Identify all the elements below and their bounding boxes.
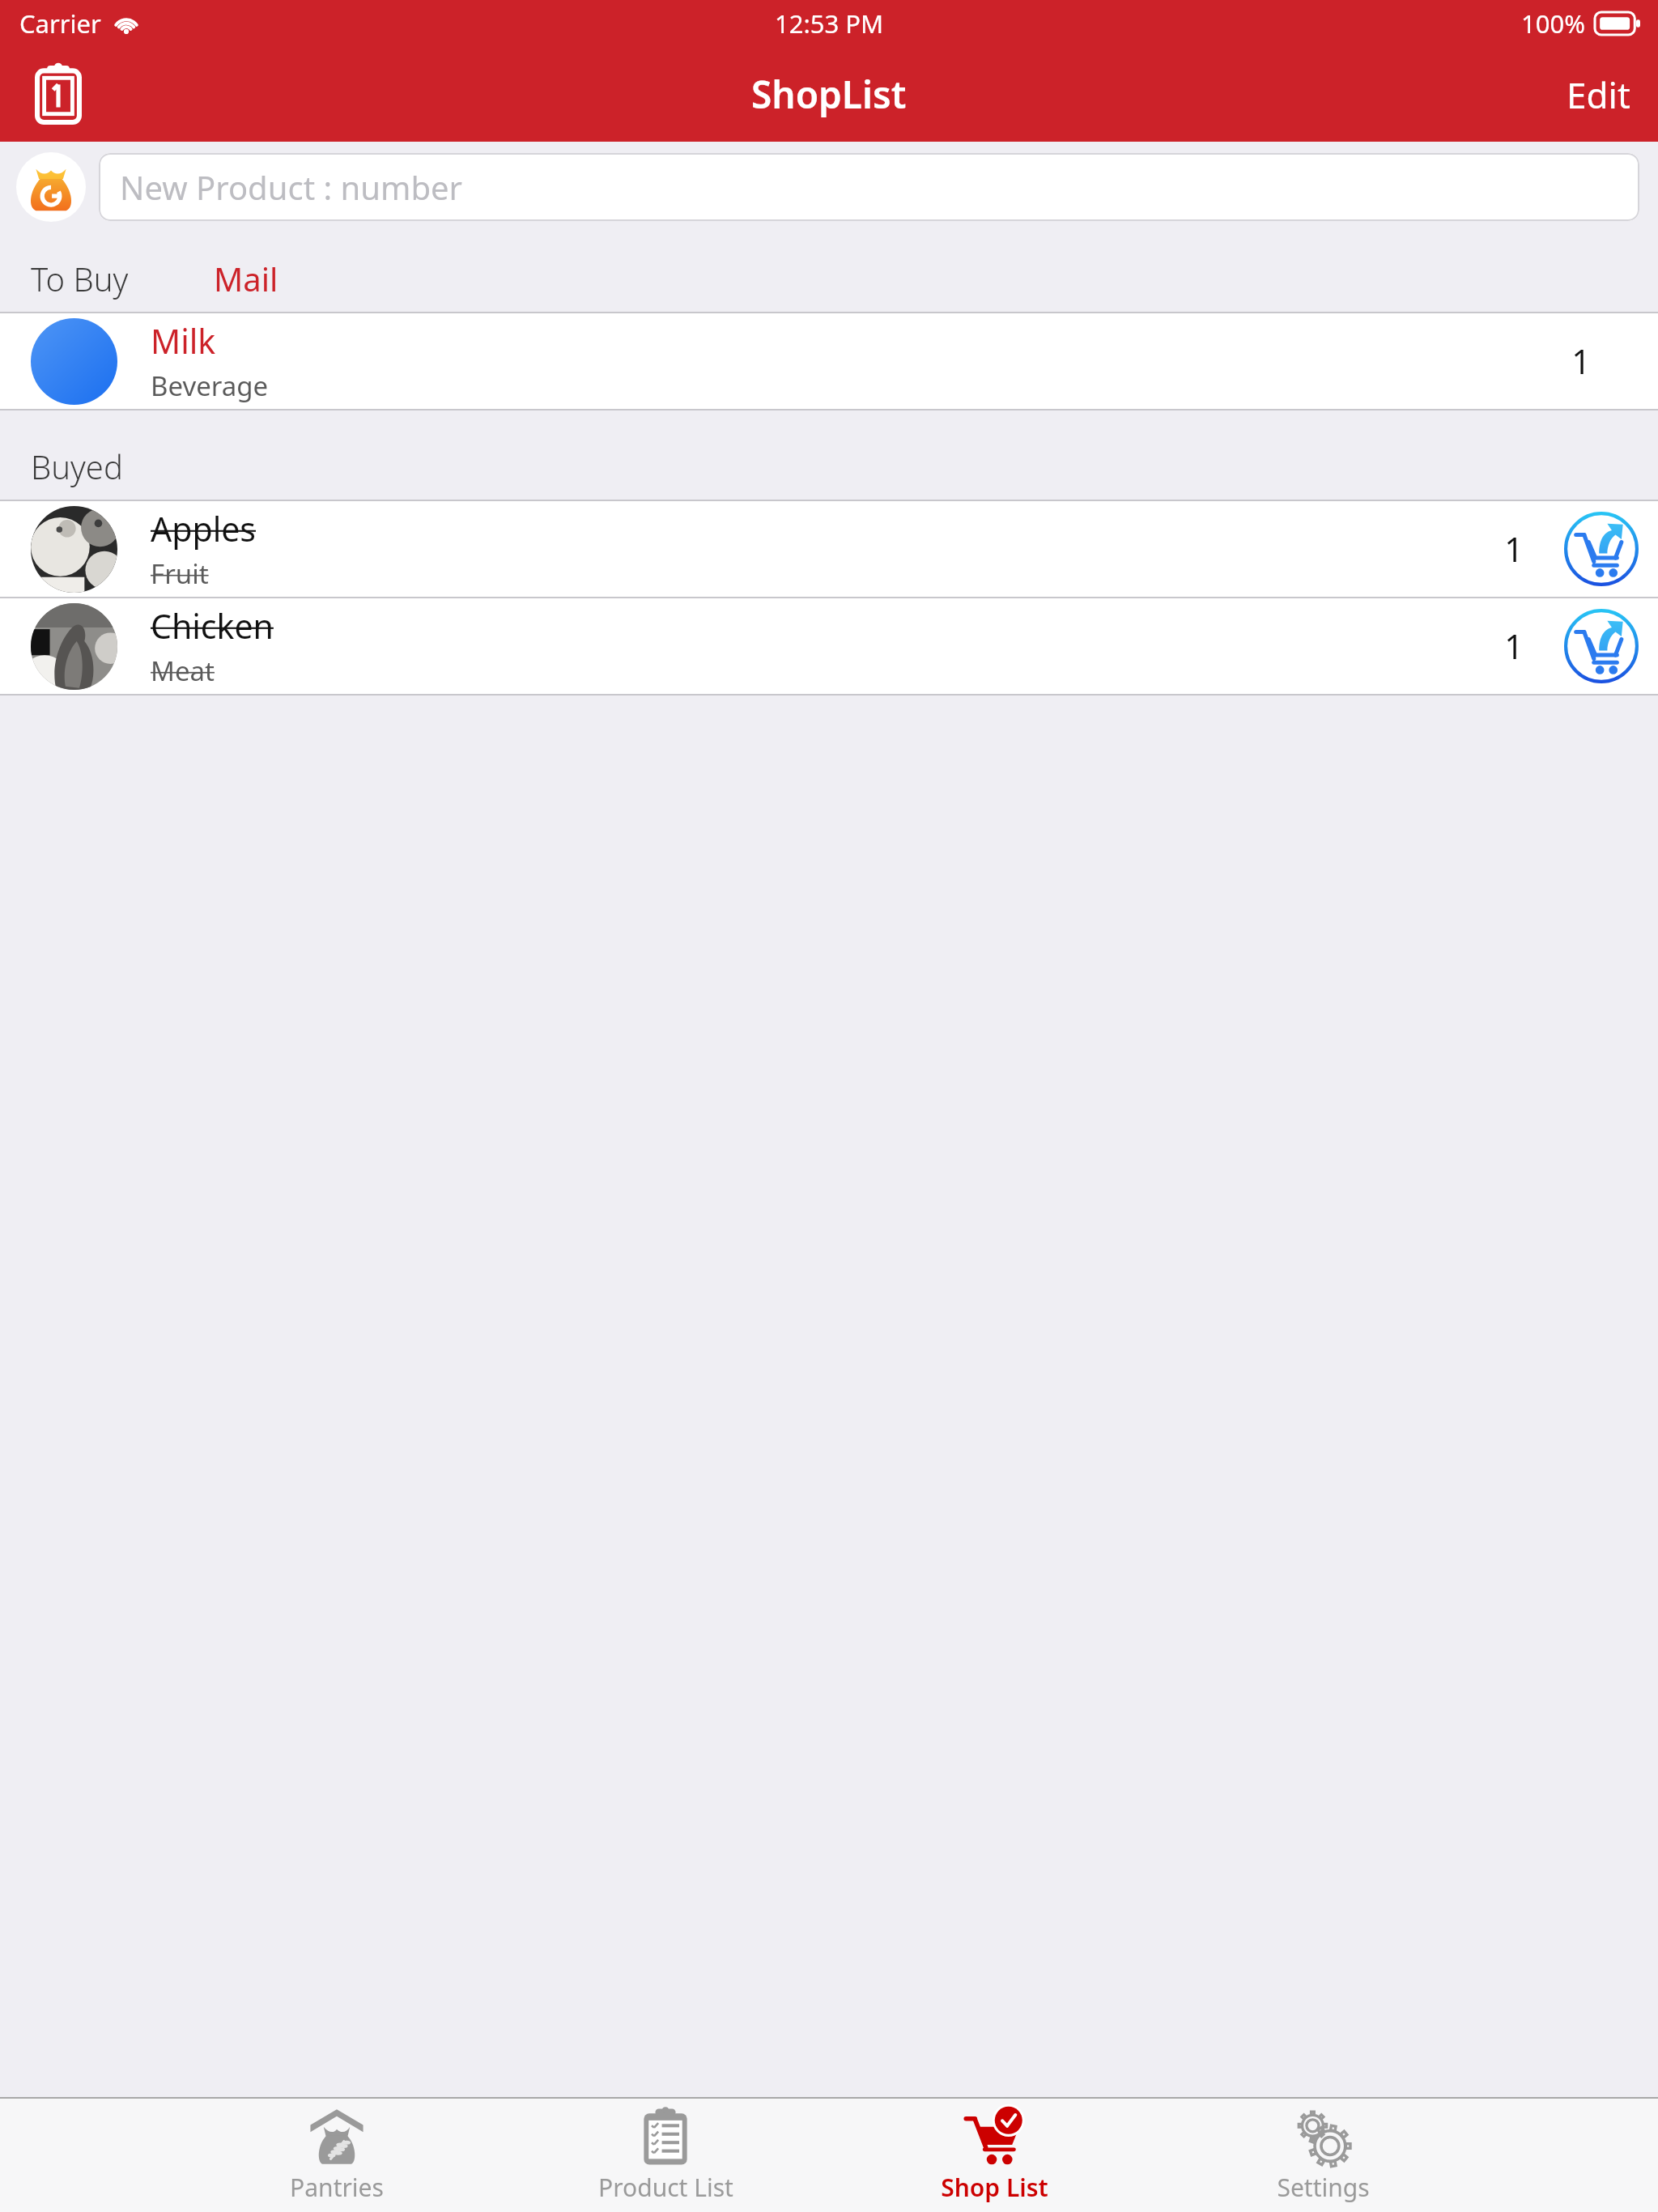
staticText: Buyed bbox=[31, 445, 123, 488]
button[interactable]: Shop List bbox=[830, 2099, 1158, 2212]
staticText: 100% bbox=[1521, 6, 1585, 40]
button[interactable]: Move back to buy list bbox=[1562, 607, 1640, 685]
button[interactable]: Apples bbox=[0, 501, 1658, 597]
staticText: Chicken bbox=[151, 603, 274, 649]
staticText: 1 bbox=[1504, 526, 1524, 572]
staticText: Meat bbox=[151, 653, 215, 689]
staticText: Settings bbox=[1277, 2171, 1370, 2204]
staticText: Carrier bbox=[19, 6, 101, 40]
staticText: Edit bbox=[1567, 70, 1630, 119]
button[interactable]: Pantries bbox=[172, 2099, 501, 2212]
staticText: Shop List bbox=[941, 2171, 1048, 2204]
button[interactable]: Chicken bbox=[0, 598, 1658, 694]
staticText: Fruit bbox=[151, 555, 209, 592]
button[interactable]: Mail bbox=[214, 257, 278, 300]
staticText: Apples bbox=[151, 506, 256, 551]
staticText: To Buy bbox=[31, 257, 129, 300]
button[interactable]: New Product : number bbox=[99, 153, 1639, 221]
button[interactable]: Shopping lists bbox=[24, 61, 92, 129]
staticText: Beverage bbox=[151, 368, 269, 404]
staticText: 12:53 PM bbox=[775, 6, 884, 40]
staticText: Milk bbox=[151, 318, 216, 364]
button[interactable]: Select shop bbox=[16, 152, 86, 222]
button[interactable]: Milk bbox=[0, 313, 1658, 409]
staticText: Product List bbox=[598, 2171, 733, 2204]
staticText: New Product : number bbox=[120, 165, 463, 209]
staticText: 1 bbox=[1504, 623, 1524, 669]
button[interactable]: Settings bbox=[1158, 2099, 1487, 2212]
staticText: Pantries bbox=[290, 2171, 384, 2204]
button[interactable]: Product List bbox=[501, 2099, 830, 2212]
staticText: 1 bbox=[1571, 338, 1591, 384]
button[interactable]: Edit bbox=[1539, 57, 1658, 132]
staticText: ShopList bbox=[751, 69, 907, 120]
button[interactable]: Move back to buy list bbox=[1562, 510, 1640, 588]
